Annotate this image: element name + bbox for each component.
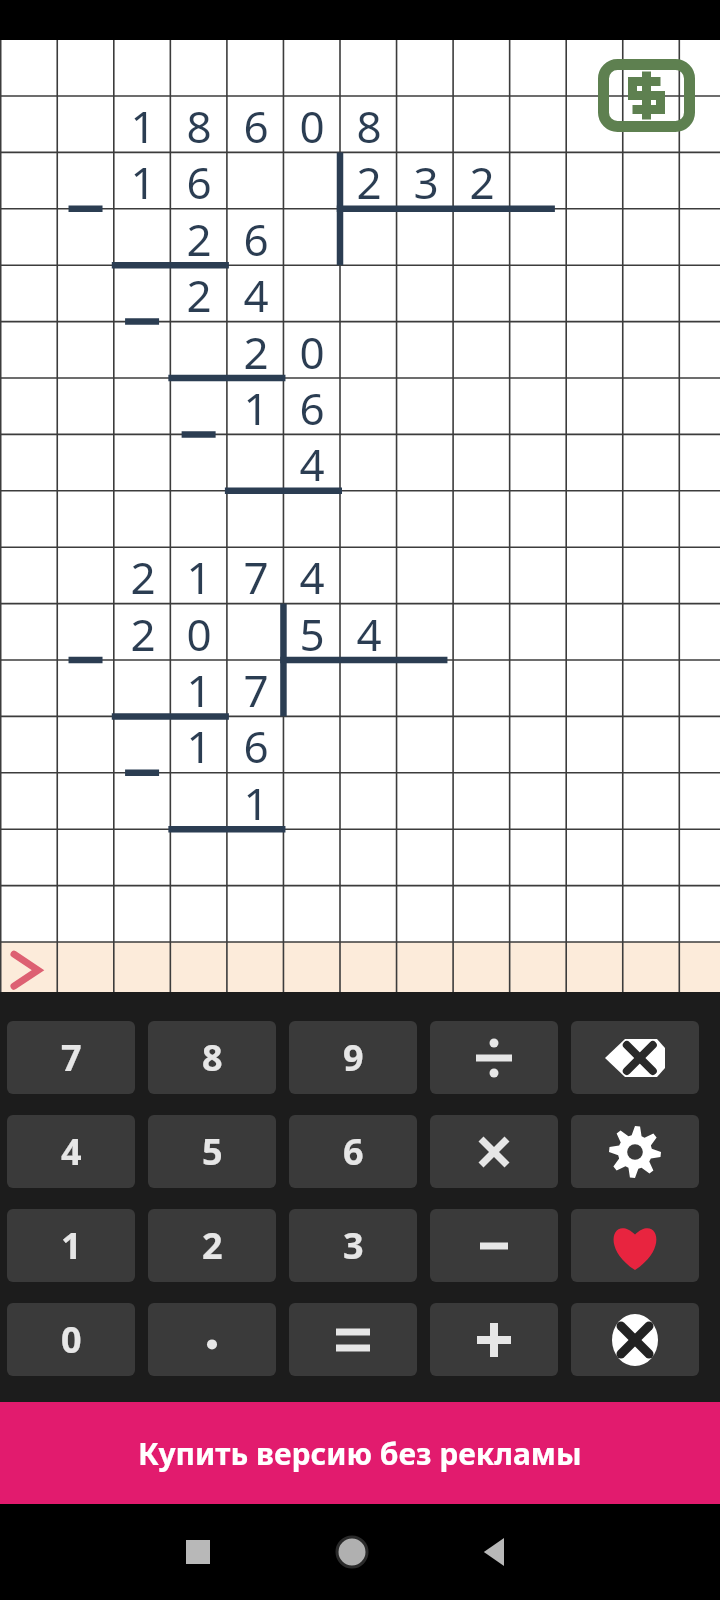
- button[interactable]: Home: [334, 1534, 370, 1570]
- button[interactable]: [148, 1303, 276, 1376]
- button[interactable]: [430, 1115, 558, 1188]
- button[interactable]: heart: [571, 1209, 699, 1282]
- staticText: 9: [343, 1033, 364, 1082]
- staticText: 5: [299, 604, 325, 660]
- staticText: 4: [356, 604, 382, 660]
- staticText: 0: [186, 604, 212, 660]
- staticText: 2: [469, 152, 495, 208]
- staticText: 0: [299, 322, 325, 378]
- button[interactable]: [430, 1209, 558, 1282]
- staticText: 6: [186, 152, 212, 208]
- staticText: 0: [299, 96, 325, 152]
- staticText: 1: [186, 716, 212, 772]
- button[interactable]: 9: [289, 1021, 417, 1094]
- staticText: 0: [61, 1315, 82, 1364]
- staticText: 2: [130, 604, 156, 660]
- staticText: 7: [61, 1033, 82, 1082]
- staticText: 2: [356, 152, 382, 208]
- button[interactable]: [430, 1303, 558, 1376]
- button[interactable]: 7: [7, 1021, 135, 1094]
- staticText: 1: [186, 547, 212, 603]
- staticText: 2: [243, 322, 269, 378]
- staticText: 2: [202, 1221, 223, 1270]
- button[interactable]: gear: [571, 1115, 699, 1188]
- button[interactable]: Recents: [182, 1536, 214, 1568]
- staticText: 8: [202, 1033, 223, 1082]
- staticText: 1: [130, 96, 156, 152]
- staticText: 8: [356, 96, 382, 152]
- button[interactable]: [289, 1303, 417, 1376]
- staticText: 4: [299, 547, 325, 603]
- staticText: 6: [243, 209, 269, 265]
- button[interactable]: Купить версию без рекламы: [0, 1402, 720, 1504]
- staticText: 6: [299, 378, 325, 434]
- button[interactable]: 1: [7, 1209, 135, 1282]
- staticText: 4: [243, 265, 269, 321]
- staticText: 4: [299, 434, 325, 490]
- staticText: 1: [243, 773, 269, 829]
- staticText: 5: [202, 1127, 223, 1176]
- staticText: 1: [130, 152, 156, 208]
- button[interactable]: Buy: [598, 59, 695, 132]
- staticText: 6: [243, 96, 269, 152]
- staticText: 8: [186, 96, 212, 152]
- button[interactable]: 5: [148, 1115, 276, 1188]
- staticText: 3: [343, 1221, 364, 1270]
- button[interactable]: 0: [7, 1303, 135, 1376]
- staticText: Купить версию без рекламы: [138, 1433, 582, 1474]
- button[interactable]: 6: [289, 1115, 417, 1188]
- button[interactable]: 2: [148, 1209, 276, 1282]
- staticText: 3: [413, 152, 439, 208]
- staticText: 2: [186, 265, 212, 321]
- staticText: 2: [186, 209, 212, 265]
- button[interactable]: 3: [289, 1209, 417, 1282]
- button[interactable]: 8: [148, 1021, 276, 1094]
- button[interactable]: close: [571, 1303, 699, 1376]
- staticText: 6: [243, 716, 269, 772]
- button[interactable]: Back: [480, 1536, 512, 1568]
- button[interactable]: bk: [571, 1021, 699, 1094]
- button[interactable]: 4: [7, 1115, 135, 1188]
- staticText: 7: [243, 547, 269, 603]
- staticText: 2: [130, 547, 156, 603]
- staticText: 1: [186, 660, 212, 716]
- staticText: 1: [61, 1221, 82, 1270]
- staticText: 7: [243, 660, 269, 716]
- staticText: 6: [343, 1127, 364, 1176]
- staticText: 4: [61, 1127, 82, 1176]
- staticText: 1: [243, 378, 269, 434]
- button[interactable]: [430, 1021, 558, 1094]
